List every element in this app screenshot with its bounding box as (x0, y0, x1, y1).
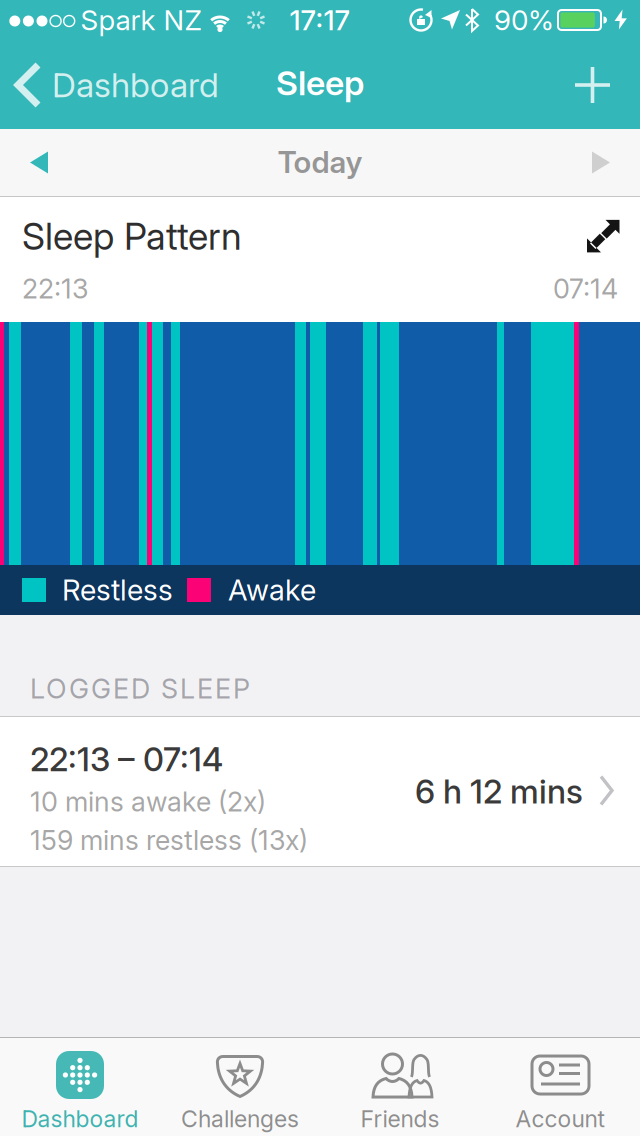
staticText: LOGGED SLEEP (30, 672, 250, 705)
staticText: Spark NZ (80, 3, 201, 37)
staticText: Awake (228, 572, 316, 608)
staticText: Friends (360, 1105, 439, 1133)
button[interactable]: Dashboard (0, 1038, 160, 1136)
staticText: Dashboard (52, 64, 219, 105)
staticText: Sleep (276, 62, 364, 103)
staticText: 10 mins awake (2x) (30, 785, 266, 818)
staticText: 22:13 – 07:14 (30, 739, 223, 779)
button[interactable]: Add (575, 67, 611, 103)
staticText: Today (277, 144, 362, 180)
button[interactable]: Next day (592, 151, 610, 173)
staticText: Dashboard (21, 1105, 138, 1133)
button[interactable]: Expand chart (587, 220, 620, 253)
button[interactable]: Previous day (30, 151, 48, 173)
staticText: 22:13 (22, 272, 88, 305)
button[interactable]: Friends (320, 1038, 480, 1136)
staticText: 17:17 (289, 3, 350, 37)
button[interactable]: Dashboard (15, 63, 219, 107)
staticText: 90% (494, 3, 554, 37)
staticText: Account (515, 1105, 604, 1133)
staticText: Sleep Pattern (22, 214, 242, 259)
staticText: 159 mins restless (13x) (30, 824, 308, 857)
staticText: 07:14 (553, 272, 618, 305)
staticText: 6 h 12 mins (415, 771, 583, 811)
button[interactable]: Challenges (160, 1038, 320, 1136)
button[interactable]: Account (480, 1038, 640, 1136)
staticText: Challenges (181, 1105, 299, 1133)
staticText: Restless (62, 572, 173, 608)
button[interactable]: 22:13 – 07:14 (0, 717, 640, 866)
